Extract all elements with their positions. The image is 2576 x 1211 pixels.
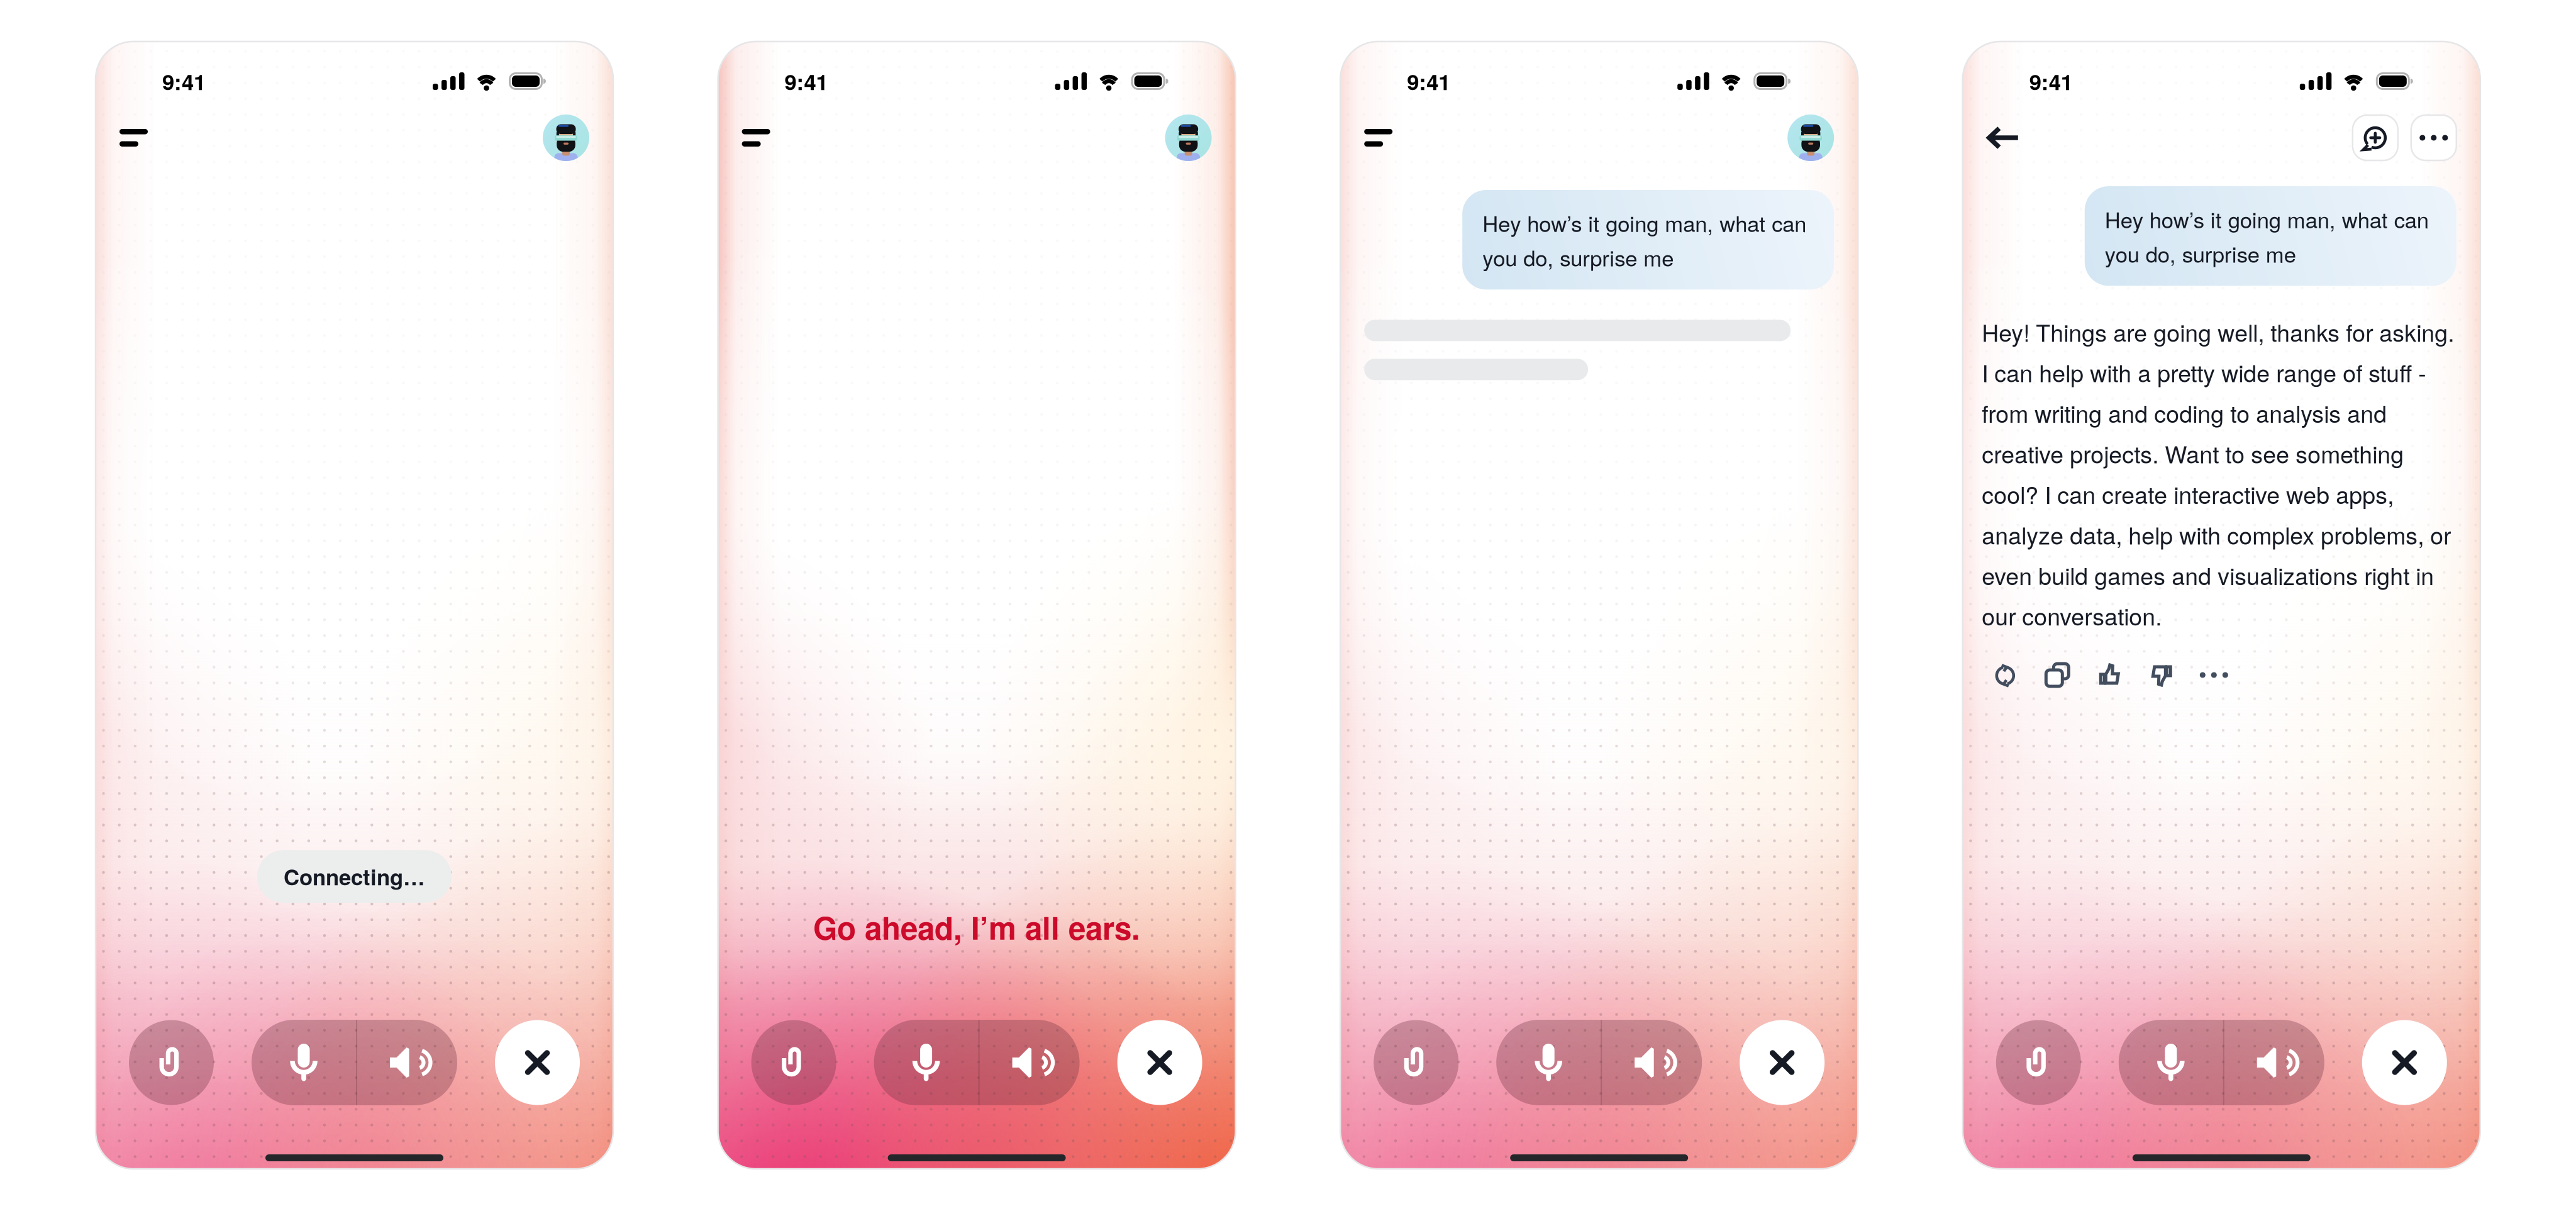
button[interactable]: End voice session <box>2362 1020 2447 1105</box>
button[interactable]: End voice session <box>495 1020 580 1105</box>
button[interactable]: Attach file <box>1996 1020 2081 1105</box>
button[interactable]: Speaker <box>2224 1020 2324 1105</box>
button[interactable]: Back <box>1987 114 2033 161</box>
button[interactable]: More options <box>2411 115 2456 160</box>
button[interactable]: Attach file <box>751 1020 836 1105</box>
button[interactable]: Mute microphone <box>2119 1020 2223 1105</box>
button[interactable]: Mute microphone <box>252 1020 356 1105</box>
button[interactable]: Mute microphone <box>874 1020 978 1105</box>
button[interactable]: Speaker <box>1602 1020 1702 1105</box>
button[interactable]: End voice session <box>1117 1020 1202 1105</box>
staticText: 9:41 <box>785 66 828 97</box>
staticText: Hey how’s it going man, what can you do,… <box>2105 203 2429 269</box>
button[interactable]: Attach file <box>129 1020 214 1105</box>
button[interactable]: Profile <box>1787 114 1834 161</box>
button[interactable]: Bad response <box>2136 660 2188 690</box>
button[interactable]: Profile <box>543 114 589 161</box>
button[interactable]: Menu <box>119 114 166 161</box>
staticText: Connecting… <box>284 861 425 892</box>
button[interactable]: Copy <box>2031 660 2083 690</box>
button[interactable]: Mute microphone <box>1496 1020 1601 1105</box>
staticText: 9:41 <box>1407 66 1450 97</box>
button[interactable]: Menu <box>742 114 788 161</box>
button[interactable]: End voice session <box>1740 1020 1825 1105</box>
staticText: Hey! Things are going well, thanks for a… <box>1982 315 2454 632</box>
button[interactable]: Good response <box>2083 660 2136 690</box>
button[interactable]: Retry <box>1979 660 2031 690</box>
staticText: Hey how’s it going man, what can you do,… <box>1482 207 1806 273</box>
staticText: Go ahead, I’m all ears. <box>813 905 1140 949</box>
button[interactable]: Profile <box>1165 114 1212 161</box>
staticText: 9:41 <box>162 66 206 97</box>
button[interactable]: Speaker <box>980 1020 1080 1105</box>
staticText: 9:41 <box>2029 66 2073 97</box>
button[interactable]: Attach file <box>1374 1020 1459 1105</box>
button[interactable]: Speaker <box>357 1020 457 1105</box>
button[interactable]: More options <box>2188 660 2240 690</box>
button[interactable]: New chat <box>2353 115 2398 160</box>
button[interactable]: Menu <box>1364 114 1411 161</box>
